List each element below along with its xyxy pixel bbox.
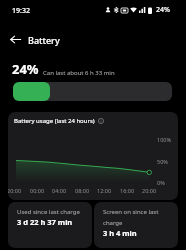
staticText: 08:00: [75, 187, 90, 194]
staticText: 3 d 22 h 37 min: [17, 217, 73, 227]
staticText: Battery usage (last 24 hours): [14, 117, 95, 125]
staticText: 19:32: [12, 6, 30, 16]
button[interactable]: Screen on since last charge: [94, 202, 178, 248]
staticText: 24%: [156, 5, 170, 15]
staticText: 04:00: [52, 187, 67, 194]
staticText: Can last about 6 h 33 min: [43, 69, 115, 77]
staticText: 0%: [157, 179, 165, 186]
staticText: 20:00: [8, 187, 22, 194]
button[interactable]: Battery usage (last 24 hours): [8, 112, 178, 200]
staticText: Battery: [28, 34, 60, 46]
staticText: Screen on since last charge: [103, 208, 173, 227]
staticText: 100%: [157, 136, 172, 143]
staticText: 16:00: [120, 187, 135, 194]
button[interactable]: Used since last charge: [8, 202, 92, 248]
staticText: Used since last charge: [17, 208, 80, 216]
staticText: 3 h 4 min: [103, 228, 137, 238]
staticText: 12:00: [97, 187, 112, 194]
staticText: 24%: [12, 60, 39, 78]
staticText: 50%: [157, 158, 168, 165]
staticText: 00:00: [30, 187, 45, 194]
staticText: 20:00: [142, 187, 157, 194]
button[interactable]: Back: [4, 28, 26, 50]
